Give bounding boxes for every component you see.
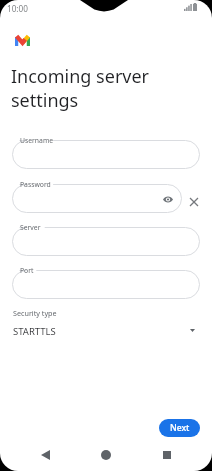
staticText: Port [20,266,34,275]
button[interactable]: Home [99,448,113,462]
button[interactable]: Password [12,184,182,213]
button[interactable]: Back [38,448,52,462]
button[interactable]: Next [159,419,200,437]
staticText: STARTTLS [13,325,56,338]
button[interactable]: Port [12,270,200,299]
staticText: Next [170,422,190,434]
staticText: Password [20,180,51,189]
button[interactable]: Clear [190,198,198,206]
button[interactable]: Show password [161,192,175,206]
staticText: Security type [13,308,57,318]
staticText: 10:00 [7,3,28,14]
staticText: Server [20,223,41,232]
staticText: Incoming server settings [11,64,171,112]
button[interactable]: Server [12,227,200,256]
button[interactable]: Recents [160,448,174,462]
button[interactable]: Username [12,140,200,169]
button[interactable]: Security type [0,303,212,339]
staticText: Username [20,136,54,145]
